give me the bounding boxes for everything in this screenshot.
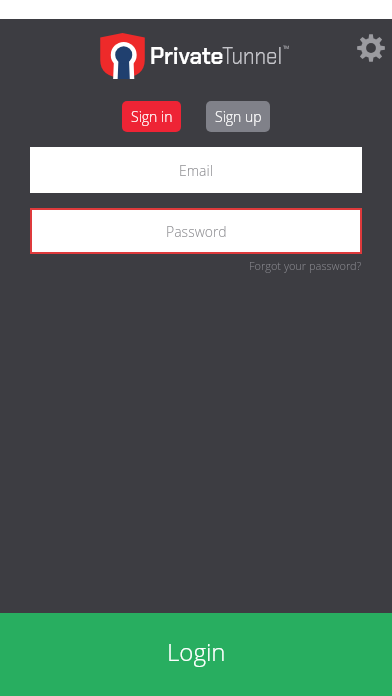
button[interactable]: Login — [0, 613, 392, 696]
staticText: Email — [179, 161, 213, 180]
staticText: Forgot your password? — [249, 258, 362, 273]
staticText: Private — [150, 40, 224, 71]
button[interactable]: Sign in — [122, 101, 181, 132]
staticText: Login — [167, 635, 226, 668]
button[interactable]: Password — [30, 208, 362, 254]
staticText: Password — [166, 222, 227, 241]
staticText: Tunnel — [222, 40, 283, 71]
button[interactable]: Settings — [357, 34, 385, 62]
button[interactable]: Sign up — [206, 101, 270, 132]
staticText: ™ — [283, 42, 290, 54]
staticText: Sign up — [215, 107, 262, 126]
staticText: Sign in — [131, 107, 173, 126]
button[interactable]: Forgot your password? — [249, 258, 362, 273]
button[interactable]: Email — [30, 147, 362, 193]
